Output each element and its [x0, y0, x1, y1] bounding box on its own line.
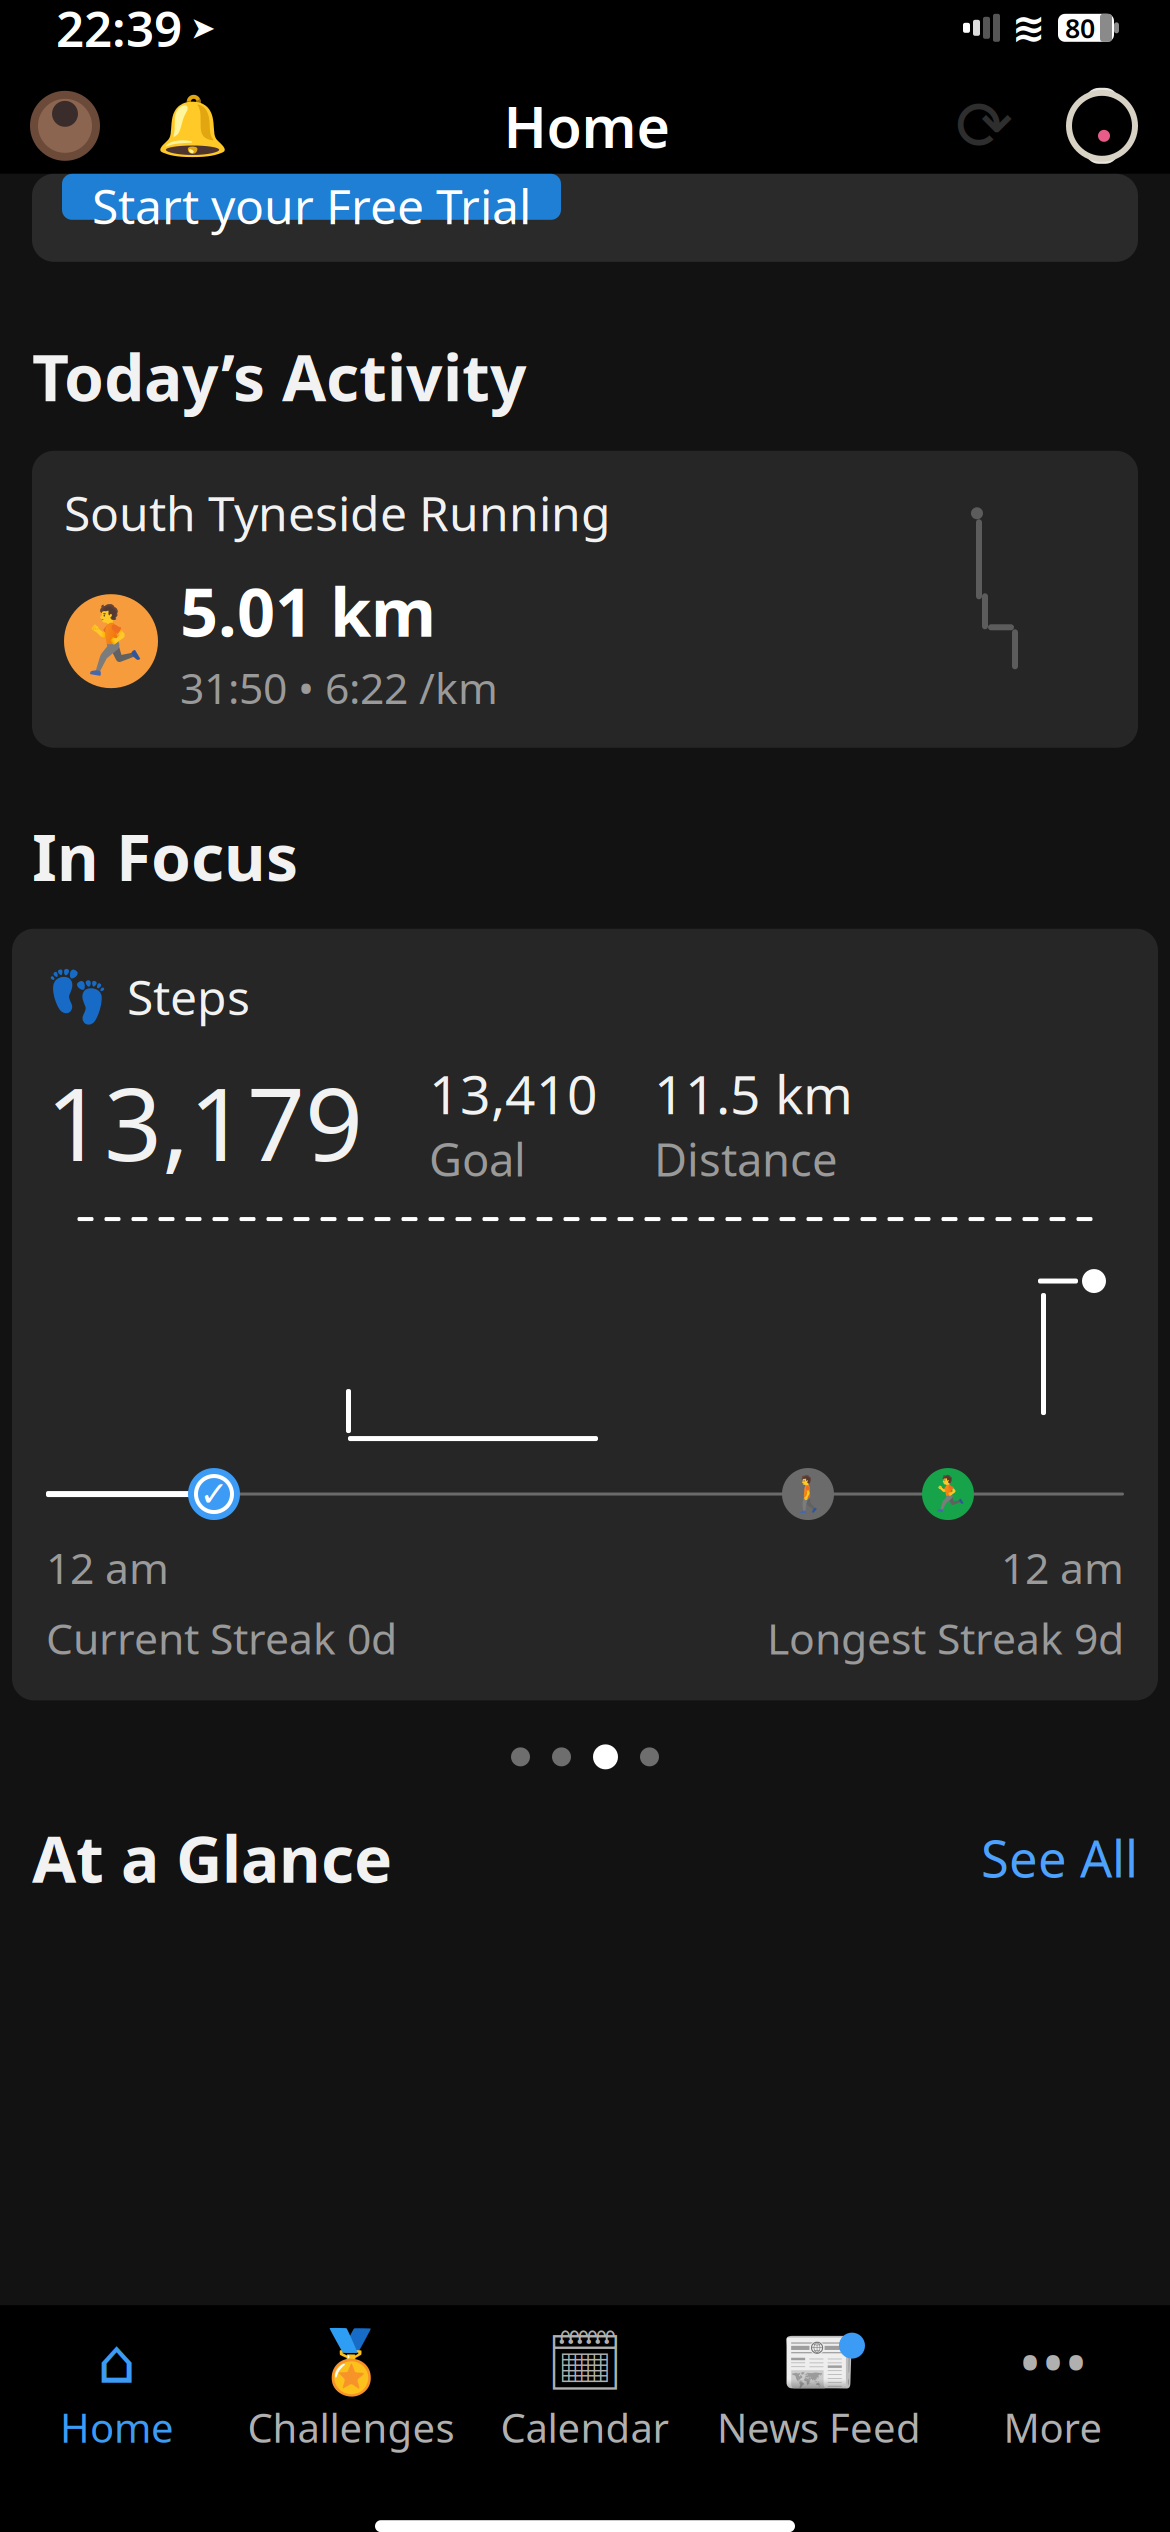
staticText: More [1003, 2401, 1102, 2454]
button[interactable]: Start your Free Trial [62, 174, 561, 220]
staticText: 🗓 [546, 2327, 624, 2397]
staticText: 🏃 [926, 1474, 969, 1514]
button[interactable]: 👣 [12, 929, 1158, 1700]
staticText: Today’s Activity [32, 334, 527, 419]
staticText: ••• [1018, 2321, 1087, 2402]
staticText: ➤ [190, 10, 216, 45]
staticText: 🚶 [786, 1474, 829, 1514]
staticText: 13,410 [429, 1058, 598, 1129]
staticText: 📰 [781, 2327, 857, 2397]
staticText: ≋ [1012, 5, 1046, 50]
staticText: Steps [127, 965, 250, 1028]
staticText: Calendar [500, 2401, 669, 2454]
staticText: Goal [429, 1129, 526, 1189]
button[interactable]: Watch [1064, 85, 1140, 167]
staticText: See All [981, 1824, 1138, 1891]
staticText: 11.5 km [654, 1058, 853, 1129]
staticText: Home [60, 2401, 174, 2454]
button[interactable]: Sync [952, 90, 1016, 162]
staticText: 22:39 [56, 0, 182, 61]
staticText: ⌂ [97, 2327, 136, 2396]
staticText: 🏃 [69, 603, 152, 679]
button[interactable]: Profile [30, 91, 100, 161]
button[interactable]: South Tyneside Running [32, 451, 1138, 748]
button[interactable]: 🗓 [468, 2317, 702, 2454]
staticText: ⟳ [955, 86, 1013, 165]
staticText: 80 [1065, 10, 1095, 45]
staticText: Longest Streak 9d [767, 1610, 1124, 1666]
staticText: Start your Free Trial [92, 174, 531, 237]
staticText: In Focus [32, 814, 298, 899]
staticText: South Tyneside Running [64, 481, 611, 544]
button[interactable]: Notifications [162, 90, 222, 162]
staticText: 🔔 [155, 92, 228, 159]
staticText: 31:50 • 6:22 /km [180, 659, 498, 716]
staticText: 12 am [1001, 1539, 1124, 1596]
staticText: 👣 [46, 968, 109, 1026]
staticText: At a Glance [32, 1815, 392, 1900]
button[interactable]: 📰 [702, 2317, 936, 2454]
staticText: Distance [654, 1129, 838, 1189]
staticText: 5.01 km [180, 567, 436, 655]
staticText: News Feed [717, 2401, 921, 2454]
staticText: Current Streak 0d [46, 1610, 397, 1666]
button[interactable]: ••• [936, 2317, 1170, 2454]
button[interactable]: ⌂ [0, 2317, 234, 2454]
button[interactable]: See All [981, 1824, 1138, 1891]
staticText: Challenges [247, 2401, 454, 2454]
staticText: 12 am [46, 1539, 169, 1596]
staticText: ✓ [199, 1474, 228, 1514]
staticText: Home [503, 88, 670, 164]
button[interactable]: 🏅 [234, 2317, 468, 2454]
staticText: 13,179 [46, 1054, 363, 1189]
staticText: 🏅 [313, 2327, 389, 2397]
